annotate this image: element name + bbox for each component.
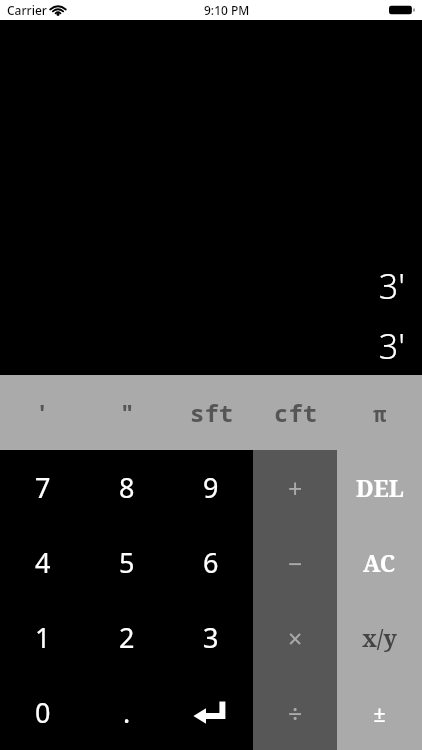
- staticText: 9: [203, 469, 219, 506]
- staticText: DEL: [356, 472, 404, 503]
- staticText: 3: [203, 619, 219, 656]
- staticText: Carrier: [7, 2, 47, 18]
- staticText: 3': [378, 323, 405, 369]
- staticText: x/y: [362, 622, 397, 653]
- staticText: sft: [190, 396, 234, 429]
- staticText: 7: [35, 469, 51, 506]
- button[interactable]: π: [338, 375, 422, 450]
- button[interactable]: 9: [169, 450, 253, 525]
- staticText: ÷: [288, 696, 303, 730]
- button[interactable]: 5: [85, 525, 169, 600]
- staticText: 4: [35, 544, 51, 581]
- staticText: −: [288, 546, 303, 580]
- button[interactable]: ÷: [253, 675, 337, 750]
- button[interactable]: 1: [0, 600, 85, 675]
- staticText: 2: [119, 619, 135, 656]
- staticText: 8: [119, 469, 135, 506]
- staticText: AC: [363, 547, 396, 578]
- button[interactable]: cft: [254, 375, 338, 450]
- staticText: ': [35, 396, 50, 429]
- staticText: ": [120, 396, 135, 429]
- button[interactable]: DEL: [337, 450, 422, 525]
- staticText: ±: [373, 697, 386, 728]
- button[interactable]: ": [85, 375, 170, 450]
- button[interactable]: −: [253, 525, 337, 600]
- button[interactable]: Enter: [169, 675, 253, 750]
- button[interactable]: AC: [337, 525, 422, 600]
- staticText: 6: [203, 544, 219, 581]
- button[interactable]: ±: [337, 675, 422, 750]
- staticText: π: [373, 398, 387, 428]
- staticText: 1: [35, 619, 51, 656]
- button[interactable]: 4: [0, 525, 85, 600]
- staticText: ×: [288, 621, 303, 655]
- button[interactable]: 3: [169, 600, 253, 675]
- button[interactable]: x/y: [337, 600, 422, 675]
- button[interactable]: 6: [169, 525, 253, 600]
- staticText: +: [288, 471, 303, 505]
- button[interactable]: 8: [85, 450, 169, 525]
- button[interactable]: sft: [170, 375, 254, 450]
- staticText: cft: [274, 396, 318, 429]
- button[interactable]: 0: [0, 675, 85, 750]
- button[interactable]: 2: [85, 600, 169, 675]
- button[interactable]: +: [253, 450, 337, 525]
- staticText: 3': [378, 263, 405, 309]
- staticText: 5: [119, 544, 135, 581]
- staticText: 9:10 PM: [204, 2, 250, 18]
- staticText: 0: [35, 694, 51, 731]
- button[interactable]: .: [85, 675, 169, 750]
- staticText: .: [123, 694, 131, 731]
- button[interactable]: 7: [0, 450, 85, 525]
- button[interactable]: ': [0, 375, 85, 450]
- button[interactable]: ×: [253, 600, 337, 675]
